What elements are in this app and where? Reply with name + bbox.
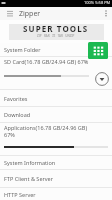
staticText: FTP Client & Server [4, 175, 53, 182]
button[interactable]: System Folder [0, 43, 112, 57]
button[interactable]: Super Tools app [88, 42, 108, 59]
button[interactable]: Menu [0, 7, 19, 20]
staticText: System Folder [4, 46, 41, 53]
button[interactable]: FTP Client & Server [0, 170, 112, 188]
button[interactable]: Super Tools advertisement [9, 24, 104, 40]
staticText: HTTP Server [4, 191, 36, 198]
staticText: 67% [4, 131, 15, 138]
staticText: Applications(16.78 GB/24.96 GB) [4, 124, 88, 131]
button[interactable]: HTTP Server [0, 188, 112, 200]
button[interactable]: Favorites [0, 90, 112, 107]
staticText: Download [4, 111, 31, 118]
button[interactable]: Download [0, 107, 112, 123]
staticText: SD Card(16.78 GB/24.94 GB) 67% [4, 58, 89, 65]
staticText: 100% 5:58 PM [84, 0, 111, 5]
staticText: SUPER TOOLS [23, 23, 89, 34]
staticText: Favorites [4, 95, 28, 102]
staticText: ZIP RAR 7Z TAR UNZIP [37, 34, 75, 38]
button[interactable]: Applications(16.78 GB/24.96 GB) [0, 123, 112, 156]
button[interactable]: More options [99, 7, 112, 20]
staticText: Zipper [19, 9, 41, 19]
button[interactable]: Expand [94, 71, 110, 87]
staticText: System Information [4, 159, 56, 166]
button[interactable]: System Information [0, 156, 112, 170]
button[interactable]: SD Card(16.78 GB/24.94 GB) 67% [0, 57, 112, 90]
